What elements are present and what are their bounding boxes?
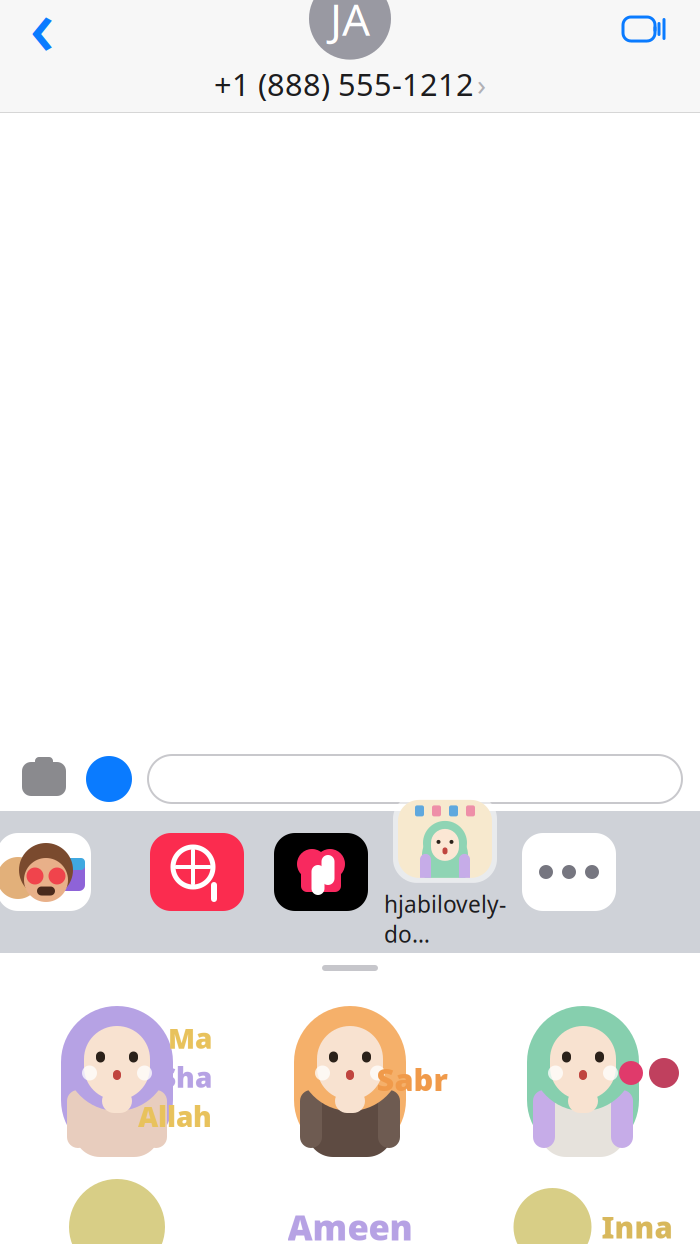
staticText: Inna xyxy=(601,1207,672,1244)
button[interactable]: Back xyxy=(10,0,74,63)
button[interactable]: Message field xyxy=(148,755,682,803)
staticText: Allah xyxy=(138,1098,212,1135)
button[interactable]: hjabilovelydo… xyxy=(383,795,507,949)
staticText: ‹ xyxy=(29,0,54,76)
button[interactable]: App xyxy=(135,828,259,916)
button[interactable]: App xyxy=(507,828,631,916)
staticText: hjabilovelydo… xyxy=(384,889,506,949)
staticText: JA xyxy=(330,0,370,48)
button[interactable]: App xyxy=(0,828,106,916)
button[interactable]: App xyxy=(259,828,383,916)
staticText: Sabr xyxy=(376,1059,447,1099)
staticText: +1 (888) 555-1212 xyxy=(214,64,474,104)
button[interactable]: FaceTime xyxy=(612,0,682,59)
staticText: › xyxy=(477,64,486,103)
button[interactable]: Camera xyxy=(18,753,70,805)
staticText: Ameen xyxy=(287,1204,412,1244)
staticText: Sha xyxy=(160,1058,212,1096)
staticText: Ma xyxy=(168,1019,212,1056)
button[interactable]: Apps xyxy=(86,756,132,802)
